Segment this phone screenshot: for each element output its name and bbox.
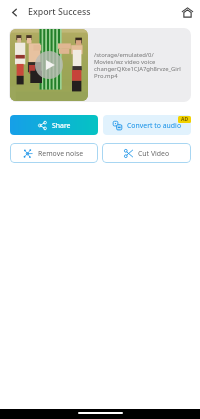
button[interactable]: Back (5, 3, 23, 21)
staticText: Share (52, 121, 71, 130)
staticText: Remove noise (38, 149, 84, 158)
staticText: Convert to audio (127, 121, 182, 130)
button[interactable]: Play video (10, 29, 88, 101)
button[interactable]: Share (10, 115, 98, 135)
button[interactable]: Convert to audio (103, 115, 191, 135)
button[interactable]: Remove noise (10, 143, 98, 163)
button[interactable]: Home (178, 3, 196, 21)
staticText: AD (181, 116, 189, 123)
staticText: /storage/emulated/0/ Movies/wz video voi… (94, 51, 181, 80)
staticText: Cut Video (138, 149, 170, 158)
staticText: Export Success (28, 6, 91, 18)
button[interactable]: Cut Video (102, 143, 191, 163)
